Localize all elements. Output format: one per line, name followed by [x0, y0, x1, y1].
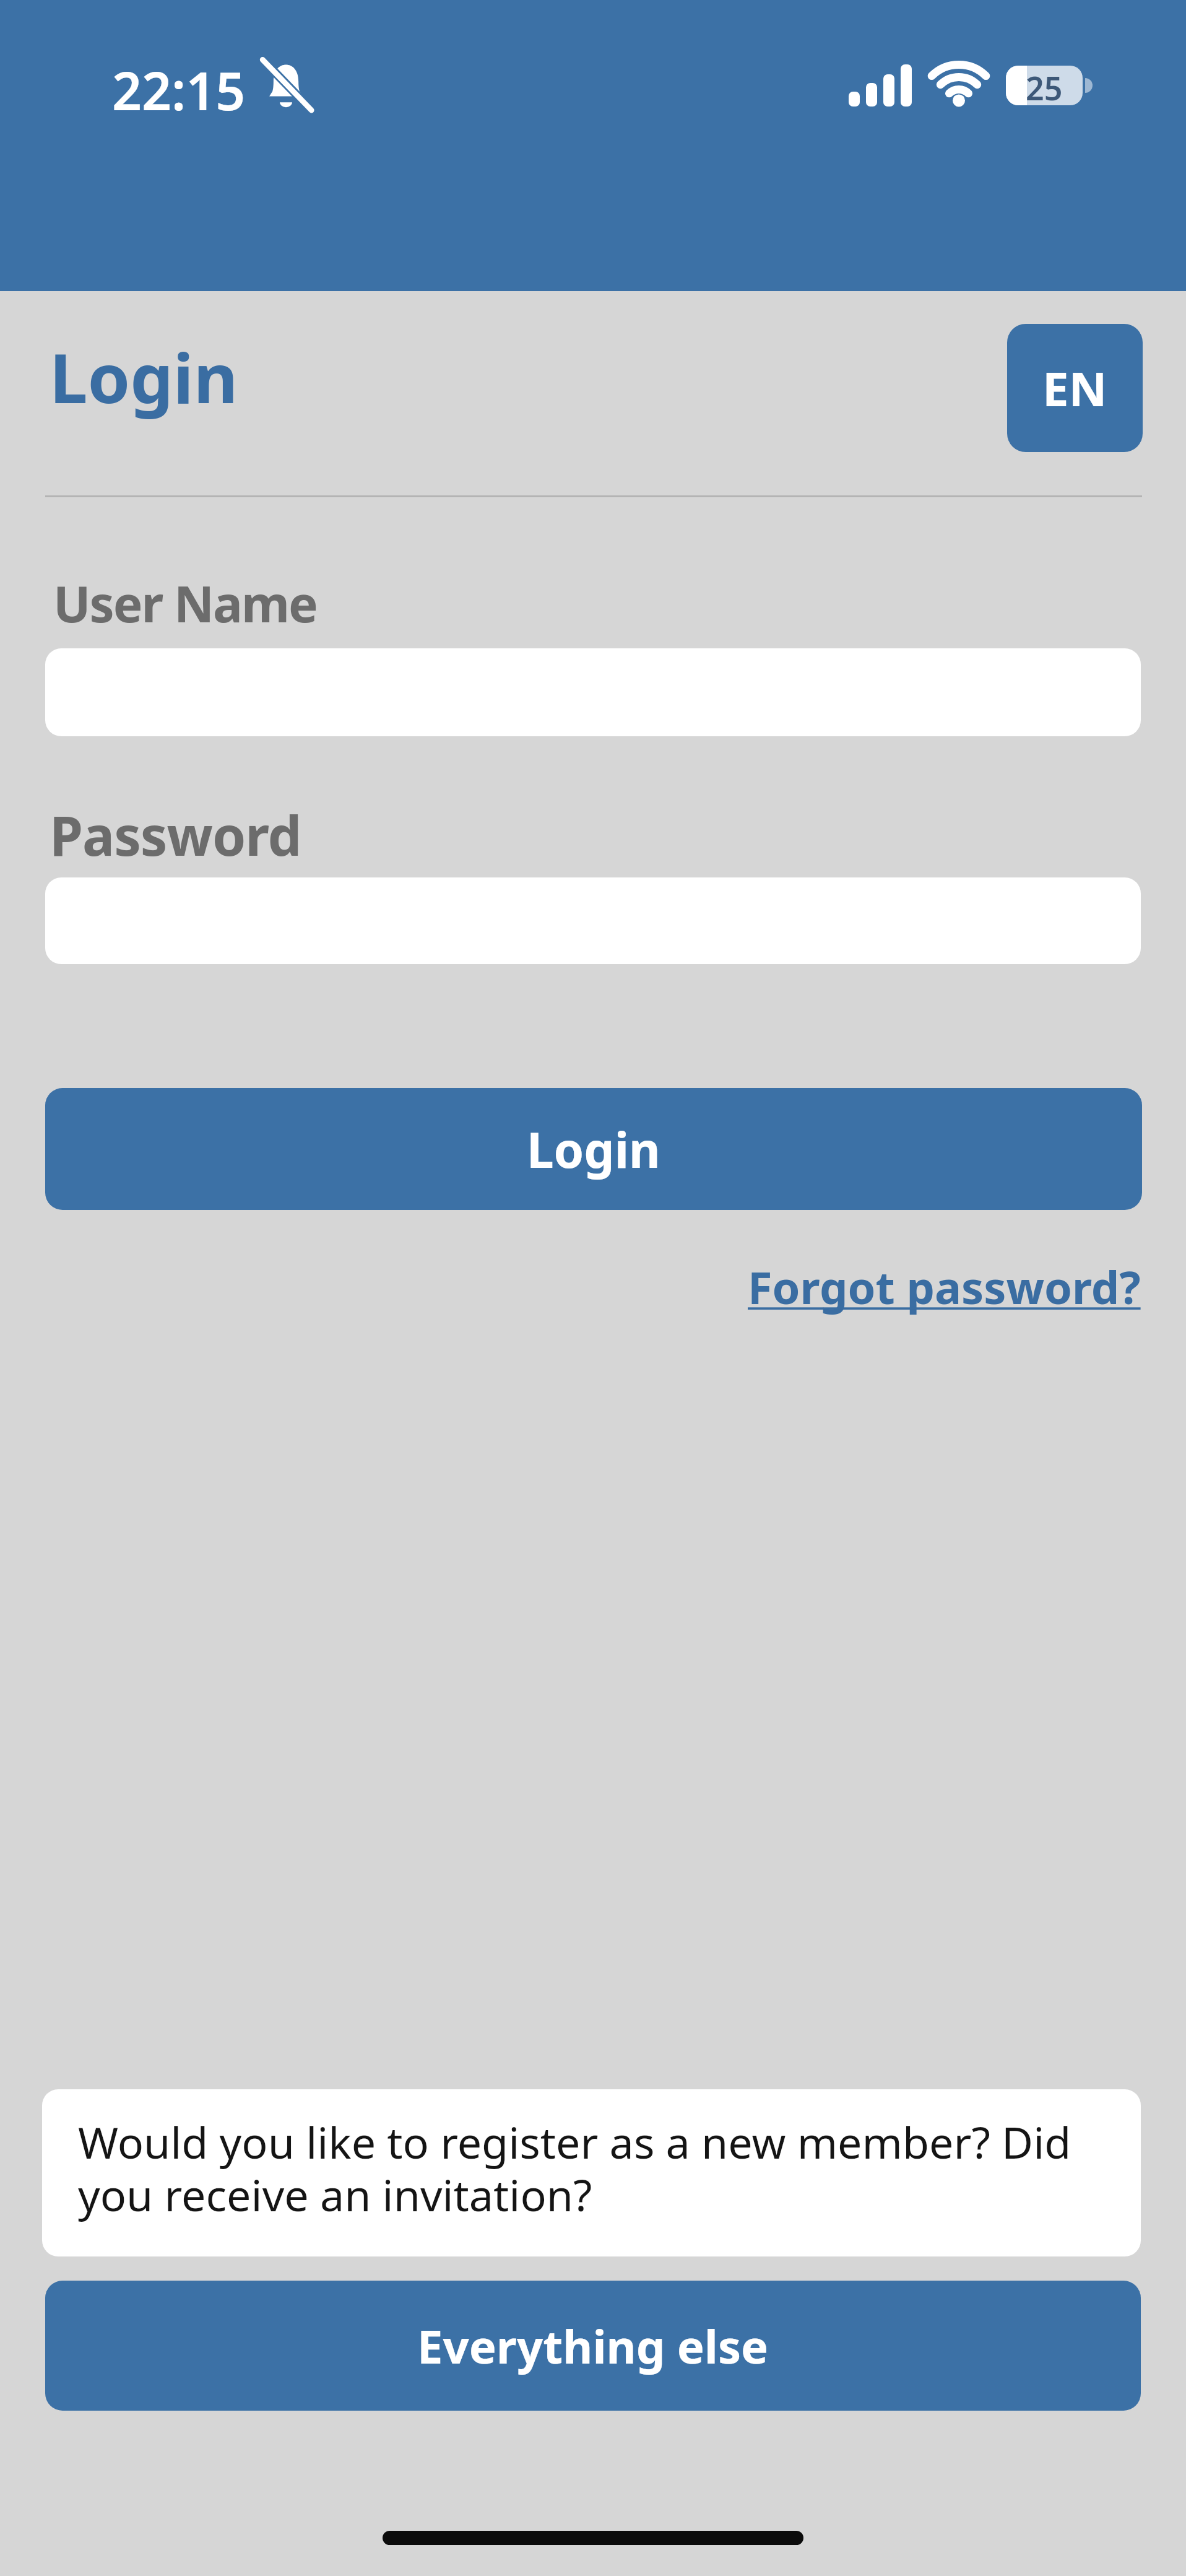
staticText: User Name [53, 569, 317, 637]
staticText: Login [527, 1116, 660, 1182]
staticText: Login [50, 330, 238, 423]
button[interactable]: Login [45, 1088, 1142, 1210]
staticText: 22:15 [112, 54, 246, 125]
staticText: 25 [1026, 66, 1063, 105]
staticText: Password [50, 798, 301, 871]
staticText: Everything else [417, 2315, 769, 2377]
button[interactable]: EN [1007, 324, 1143, 452]
staticText: EN [1042, 356, 1107, 420]
button[interactable]: Everything else [45, 2281, 1141, 2411]
button[interactable] [45, 648, 1141, 736]
staticText: Would you like to register as a new memb… [78, 2112, 1106, 2224]
button[interactable]: Forgot password? [748, 1256, 1141, 1317]
button[interactable] [45, 877, 1141, 964]
